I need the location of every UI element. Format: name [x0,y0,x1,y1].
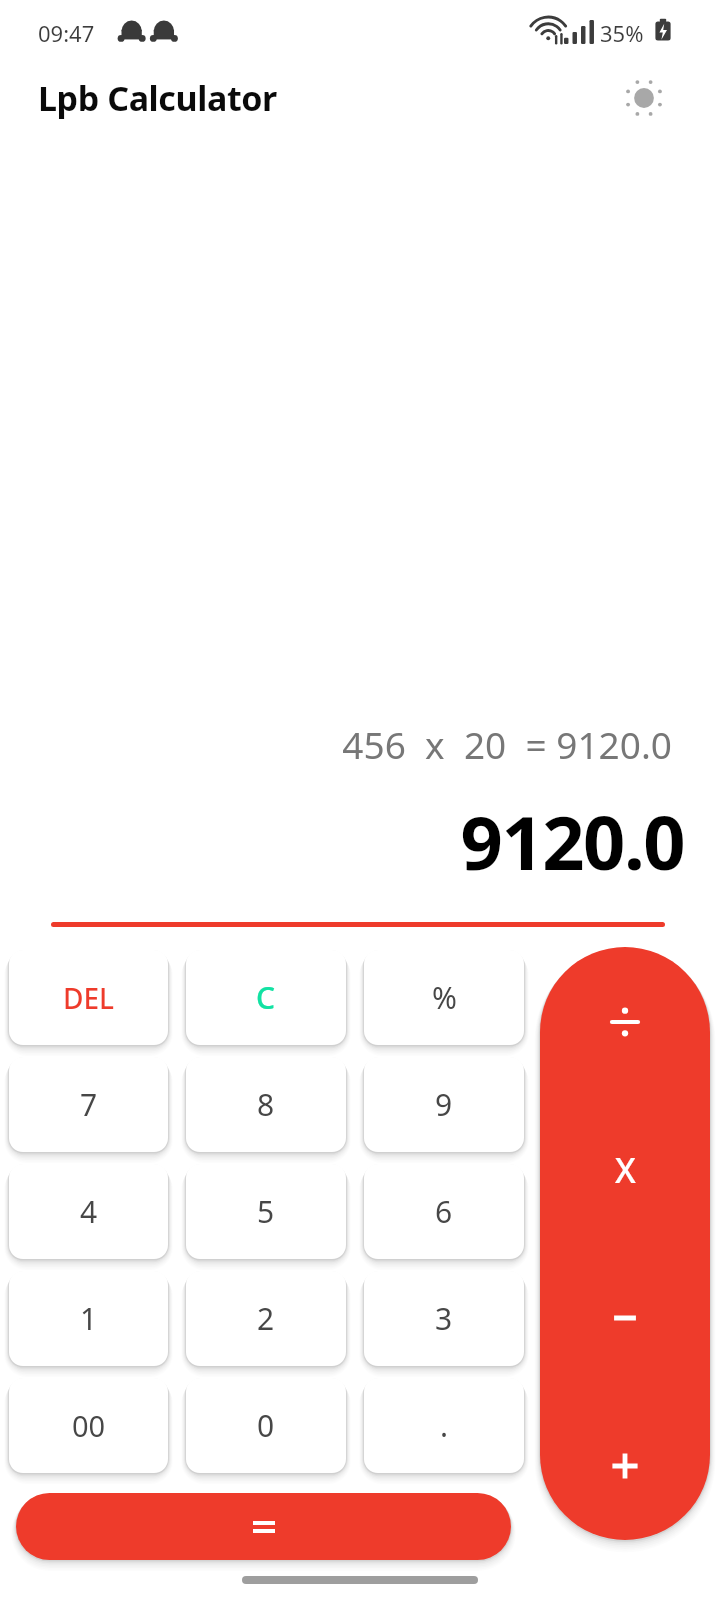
button[interactable]: 0 [186,1378,346,1473]
button[interactable]: Multiply [540,1096,710,1244]
staticText: 00 [72,1406,106,1445]
staticText: 456 x 20 = 9120.0 [0,719,672,769]
staticText: 3 [435,1298,453,1339]
button[interactable]: C [186,950,346,1045]
staticText: 9120.0 [0,791,684,892]
button[interactable]: Divide [540,947,710,1096]
staticText: 5 [257,1191,275,1232]
staticText: 09:47 [38,18,95,48]
button[interactable]: Subtract [540,1244,710,1392]
button[interactable]: 00 [9,1378,168,1473]
staticText: % [432,977,457,1018]
staticText: 35% [600,18,644,48]
staticText: 2 [257,1298,275,1339]
button[interactable]: 8 [186,1057,346,1152]
button[interactable]: 7 [9,1057,168,1152]
staticText: 6 [435,1191,453,1232]
staticText: 8 [257,1084,275,1125]
staticText: 1 [80,1298,98,1339]
button[interactable]: % [364,950,524,1045]
button[interactable] [16,1493,511,1560]
button[interactable]: DEL [9,950,168,1045]
button[interactable]: 9 [364,1057,524,1152]
button[interactable]: Toggle theme [618,72,670,124]
staticText: C [256,977,276,1018]
button[interactable]: Add [540,1392,710,1540]
staticText: . [440,1405,449,1446]
button[interactable]: 4 [9,1164,168,1259]
staticText: X [615,1147,636,1193]
staticText: Lpb Calculator [38,75,277,121]
button[interactable]: 5 [186,1164,346,1259]
button[interactable]: 3 [364,1271,524,1366]
button[interactable]: 1 [9,1271,168,1366]
staticText: 0 [257,1405,275,1446]
button[interactable]: 6 [364,1164,524,1259]
button[interactable]: 2 [186,1271,346,1366]
staticText: 7 [80,1084,98,1125]
button[interactable]: . [364,1378,524,1473]
staticText: DEL [63,979,115,1017]
staticText: 4 [80,1191,98,1232]
staticText: 9 [435,1084,453,1125]
